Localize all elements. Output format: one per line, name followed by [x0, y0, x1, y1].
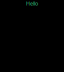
- staticText: Hello: [26, 0, 38, 7]
